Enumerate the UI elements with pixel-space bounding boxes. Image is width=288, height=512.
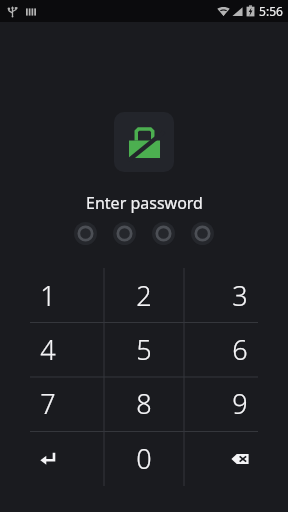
staticText: 0: [136, 440, 152, 477]
staticText: 5:56: [259, 3, 283, 19]
staticText: 8: [136, 385, 152, 422]
staticText: Enter password: [86, 192, 203, 214]
staticText: 3: [232, 277, 248, 314]
button[interactable]: Enter: [0, 431, 96, 486]
button[interactable]: 6: [192, 322, 288, 376]
button[interactable]: 3: [192, 268, 288, 322]
staticText: 9: [232, 385, 248, 422]
staticText: 6: [232, 331, 248, 368]
button[interactable]: Delete: [192, 431, 288, 486]
button[interactable]: 7: [0, 376, 96, 431]
staticText: 2: [136, 277, 152, 314]
staticText: 4: [40, 331, 56, 368]
staticText: 1: [40, 277, 56, 314]
button[interactable]: 0: [96, 431, 192, 486]
button[interactable]: 8: [96, 376, 192, 431]
button[interactable]: 4: [0, 322, 96, 376]
button[interactable]: 2: [96, 268, 192, 322]
staticText: 5: [136, 331, 152, 368]
button[interactable]: 1: [0, 268, 96, 322]
button[interactable]: 5: [96, 322, 192, 376]
button[interactable]: 9: [192, 376, 288, 431]
staticText: 7: [40, 385, 56, 422]
